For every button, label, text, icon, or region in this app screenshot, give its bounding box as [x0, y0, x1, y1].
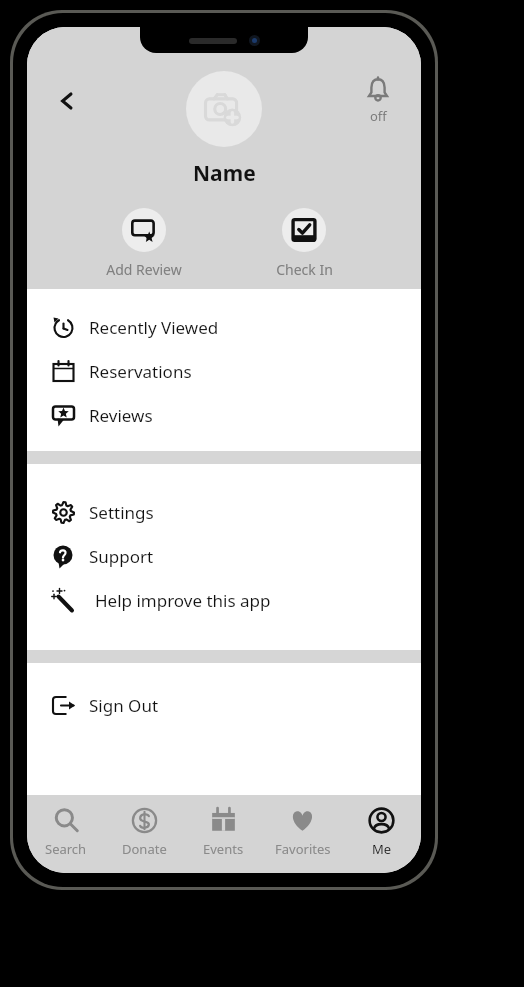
staticText: Me [372, 840, 392, 858]
button[interactable]: Favorites [263, 795, 342, 873]
button[interactable]: Events [184, 795, 263, 873]
button[interactable]: Help improve this app [27, 578, 421, 622]
button[interactable]: Search [27, 795, 105, 873]
button[interactable]: Back [45, 79, 89, 123]
staticText: Support [89, 545, 154, 568]
staticText: Events [203, 840, 244, 858]
button[interactable]: Donate [105, 795, 184, 873]
staticText: Reservations [89, 360, 192, 383]
button[interactable]: Notifications off [355, 73, 401, 127]
staticText: Sign Out [89, 694, 159, 717]
staticText: Check In [276, 260, 333, 279]
button[interactable]: Settings [27, 490, 421, 534]
button[interactable]: Recently Viewed [27, 305, 421, 349]
staticText: Add Review [106, 260, 182, 279]
staticText: Recently Viewed [89, 316, 219, 339]
staticText: Search [45, 840, 87, 858]
staticText: Settings [89, 501, 154, 524]
button[interactable]: Me [342, 795, 421, 873]
button[interactable]: Check In [250, 206, 358, 281]
staticText: Name [193, 159, 256, 188]
button[interactable]: Reservations [27, 349, 421, 393]
staticText: off [370, 107, 387, 125]
button[interactable]: Support [27, 534, 421, 578]
staticText: Help improve this app [95, 589, 271, 612]
staticText: Reviews [89, 404, 153, 427]
button[interactable]: Sign Out [27, 683, 421, 727]
staticText: Favorites [275, 840, 331, 858]
button[interactable]: Add photo [186, 71, 262, 147]
staticText: Donate [122, 840, 167, 858]
button[interactable]: Reviews [27, 393, 421, 437]
button[interactable]: Add Review [90, 206, 198, 281]
